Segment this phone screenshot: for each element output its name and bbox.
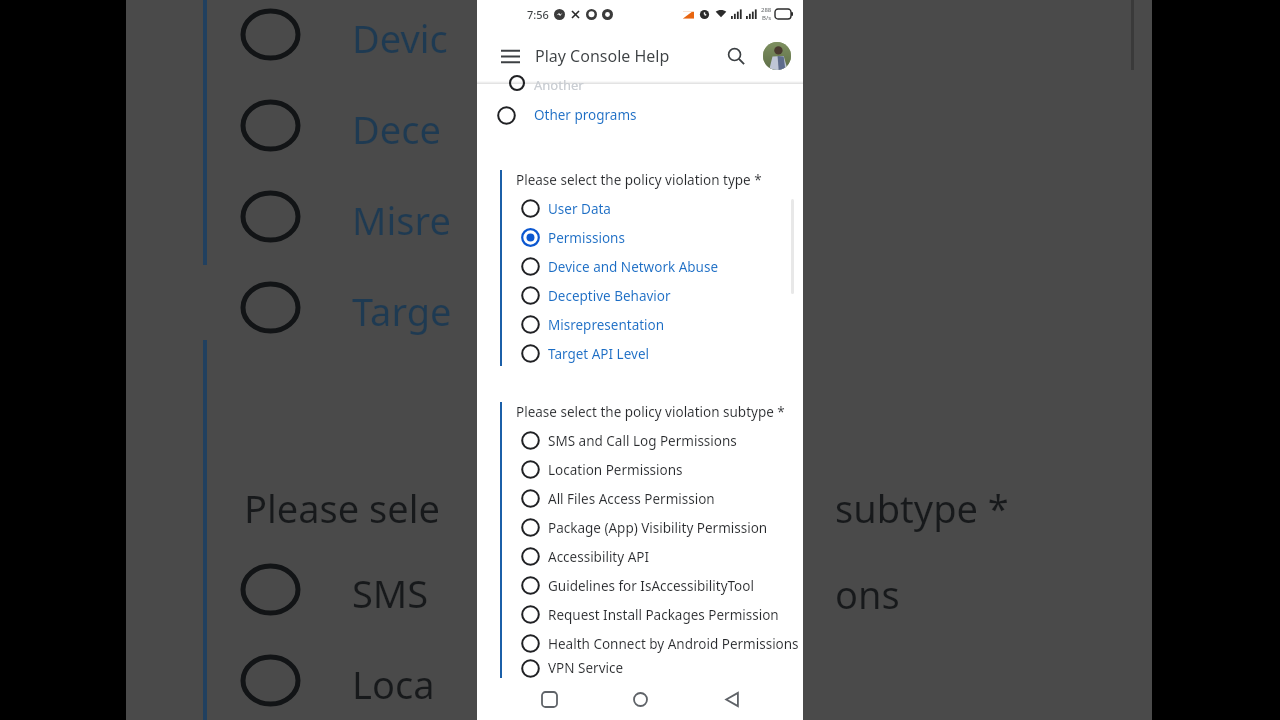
- staticText: Request Install Packages Permission: [548, 606, 779, 624]
- staticText: 7:56: [527, 7, 549, 22]
- button[interactable]: Other programs: [477, 100, 803, 130]
- button[interactable]: Deceptive Behavior: [502, 281, 803, 310]
- staticText: SMS: [352, 567, 429, 619]
- staticText: Device and Network Abuse: [548, 258, 719, 276]
- staticText: Health Connect by Android Permissions: [548, 635, 799, 653]
- button[interactable]: Misrepresentation: [502, 310, 803, 339]
- button[interactable]: All Files Access Permission: [502, 484, 803, 513]
- button[interactable]: Target API Level: [502, 339, 803, 368]
- staticText: Package (App) Visibility Permission: [548, 519, 768, 537]
- staticText: Target API Level: [548, 345, 649, 363]
- button[interactable]: Request Install Packages Permission: [502, 600, 803, 629]
- button[interactable]: Device and Network Abuse: [502, 252, 803, 281]
- button[interactable]: Recent apps: [529, 679, 569, 719]
- button[interactable]: Guidelines for IsAccessibilityTool: [502, 571, 803, 600]
- staticText: Dece: [352, 103, 441, 155]
- button[interactable]: Health Connect by Android Permissions: [502, 629, 803, 658]
- staticText: Devic: [352, 12, 448, 64]
- staticText: Misre: [352, 194, 451, 246]
- staticText: User Data: [548, 200, 611, 218]
- button[interactable]: SMS and Call Log Permissions: [502, 426, 803, 455]
- staticText: Permissions: [548, 229, 625, 247]
- staticText: Targe: [352, 285, 452, 337]
- staticText: Location Permissions: [548, 461, 683, 479]
- button[interactable]: Accessibility API: [502, 542, 803, 571]
- staticText: Another: [534, 76, 584, 92]
- staticText: SMS and Call Log Permissions: [548, 432, 737, 450]
- staticText: VPN Service: [548, 659, 624, 677]
- staticText: ons: [835, 568, 900, 620]
- button[interactable]: Back: [712, 679, 752, 719]
- staticText: Loca: [352, 658, 435, 710]
- staticText: Play Console Help: [535, 45, 670, 67]
- staticText: Deceptive Behavior: [548, 287, 671, 305]
- staticText: Guidelines for IsAccessibilityTool: [548, 577, 754, 595]
- button[interactable]: VPN Service: [502, 658, 803, 678]
- button[interactable]: Account profile: [763, 42, 791, 70]
- staticText: subtype *: [835, 482, 1009, 534]
- button[interactable]: Permissions: [502, 223, 803, 252]
- staticText: Please select the policy violation type …: [516, 171, 762, 189]
- button[interactable]: Package (App) Visibility Permission: [502, 513, 803, 542]
- staticText: Please sele: [244, 482, 440, 534]
- staticText: B/s: [762, 14, 772, 22]
- staticText: Misrepresentation: [548, 316, 665, 334]
- button[interactable]: Home: [620, 679, 660, 719]
- staticText: 288: [761, 6, 772, 14]
- button[interactable]: User Data: [502, 194, 803, 223]
- staticText: All Files Access Permission: [548, 490, 715, 508]
- staticText: Other programs: [534, 106, 637, 124]
- staticText: Accessibility API: [548, 548, 650, 566]
- button[interactable]: Open navigation menu: [493, 39, 527, 73]
- button[interactable]: Location Permissions: [502, 455, 803, 484]
- staticText: Please select the policy violation subty…: [516, 403, 785, 421]
- button[interactable]: Search: [719, 39, 753, 73]
